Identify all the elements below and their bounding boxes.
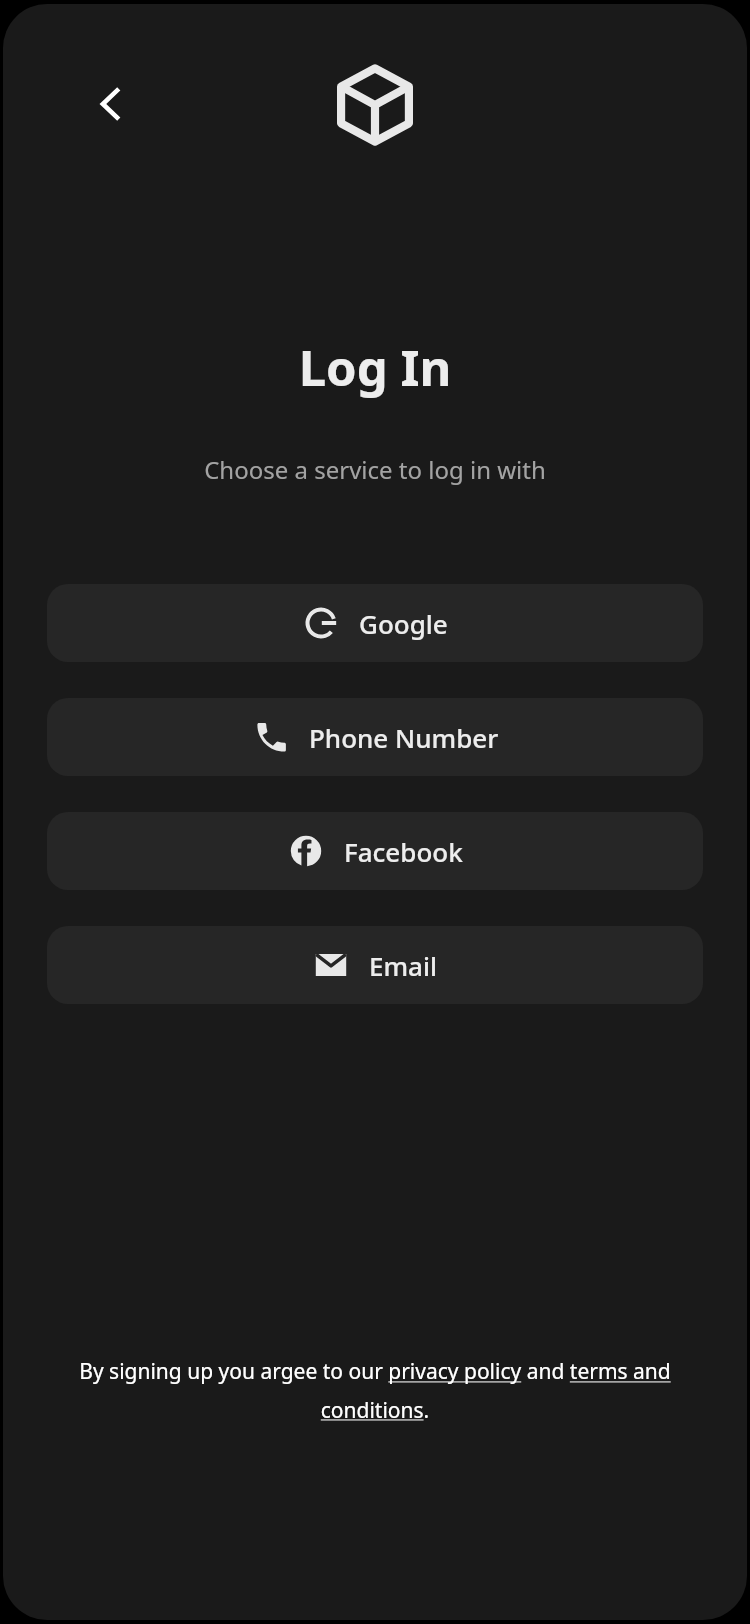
button[interactable]: By signing up you argee to our privacy p… (59, 1357, 691, 1424)
staticText: By signing up you argee to our privacy p… (59, 1357, 691, 1424)
button[interactable]: Email (47, 926, 703, 1004)
button[interactable]: Phone Number (47, 698, 703, 776)
staticText: Google (359, 606, 448, 641)
staticText: Email (369, 948, 438, 983)
staticText: Facebook (344, 834, 463, 869)
staticText: Choose a service to log in with (3, 453, 747, 486)
button[interactable]: Back (81, 74, 141, 134)
button[interactable]: Facebook (47, 812, 703, 890)
staticText: Log In (3, 334, 747, 401)
button[interactable]: Google (47, 584, 703, 662)
staticText: Phone Number (309, 720, 499, 755)
